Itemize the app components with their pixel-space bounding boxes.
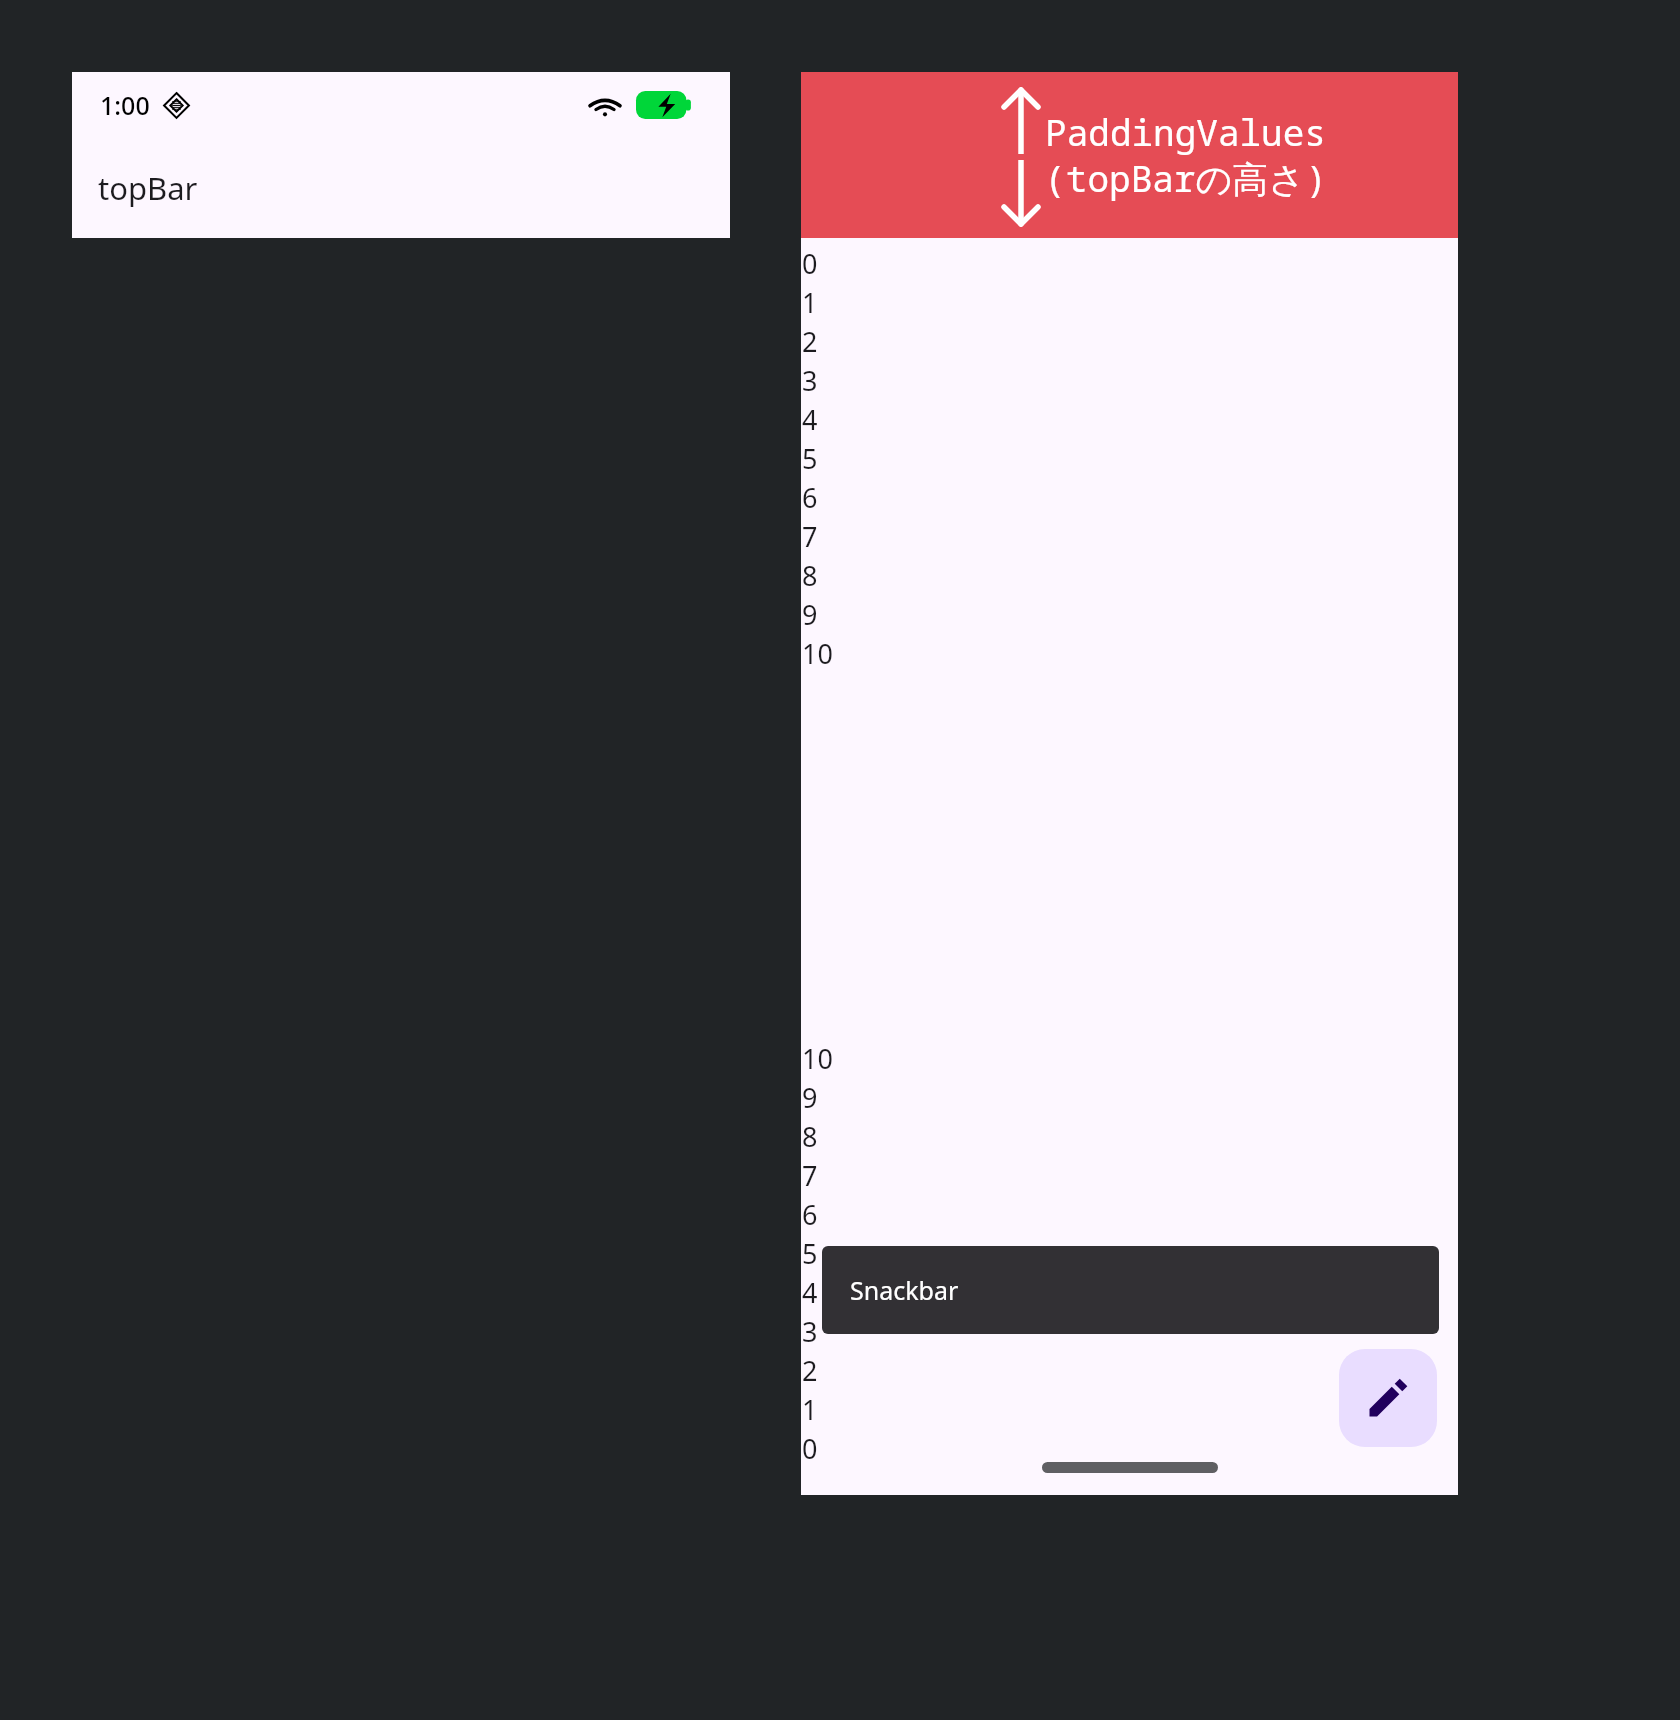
- staticText: 3: [802, 1313, 818, 1350]
- button[interactable]: 4: [801, 400, 1458, 439]
- staticText: 8: [802, 557, 818, 594]
- staticText: 9: [802, 1079, 818, 1116]
- button[interactable]: 0: [801, 1429, 1458, 1468]
- staticText: 6: [802, 1196, 818, 1233]
- button[interactable]: 7: [801, 1156, 1458, 1195]
- button[interactable]: 2: [801, 1351, 1458, 1390]
- staticText: 1: [802, 1391, 818, 1428]
- staticText: 5: [802, 1235, 818, 1272]
- staticText: topBar: [98, 167, 198, 209]
- staticText: 4: [802, 401, 818, 438]
- button[interactable]: 3: [801, 361, 1458, 400]
- button[interactable]: 1: [801, 1390, 1458, 1429]
- button[interactable]: 8: [801, 556, 1458, 595]
- staticText: 10: [802, 635, 833, 672]
- staticText: 3: [802, 362, 818, 399]
- button[interactable]: 10: [801, 634, 1458, 673]
- button[interactable]: Edit: [1339, 1349, 1437, 1447]
- button[interactable]: 5: [801, 439, 1458, 478]
- staticText: PaddingValues (topBarの高さ): [1044, 108, 1327, 203]
- staticText: Snackbar: [850, 1273, 959, 1307]
- staticText: 2: [802, 323, 818, 360]
- button[interactable]: 8: [801, 1117, 1458, 1156]
- button[interactable]: 4: [801, 1273, 1458, 1312]
- button[interactable]: 10: [801, 1039, 1458, 1078]
- button[interactable]: 9: [801, 595, 1458, 634]
- staticText: 1: [802, 284, 818, 321]
- button[interactable]: 3: [801, 1312, 1458, 1351]
- staticText: 7: [802, 1157, 818, 1194]
- button[interactable]: 6: [801, 478, 1458, 517]
- button[interactable]: 2: [801, 322, 1458, 361]
- button[interactable]: 7: [801, 517, 1458, 556]
- staticText: 4: [802, 1274, 818, 1311]
- staticText: 1:00: [100, 88, 150, 122]
- button[interactable]: 6: [801, 1195, 1458, 1234]
- staticText: 6: [802, 479, 818, 516]
- staticText: 0: [802, 1430, 818, 1467]
- staticText: 2: [802, 1352, 818, 1389]
- button[interactable]: Snackbar: [822, 1246, 1439, 1334]
- staticText: 8: [802, 1118, 818, 1155]
- staticText: 7: [802, 518, 818, 555]
- button[interactable]: 5: [801, 1234, 1458, 1273]
- staticText: 9: [802, 596, 818, 633]
- button[interactable]: 0: [801, 244, 1458, 283]
- button[interactable]: 9: [801, 1078, 1458, 1117]
- staticText: 5: [802, 440, 818, 477]
- staticText: 10: [802, 1040, 833, 1077]
- button[interactable]: 1: [801, 283, 1458, 322]
- staticText: 0: [802, 245, 818, 282]
